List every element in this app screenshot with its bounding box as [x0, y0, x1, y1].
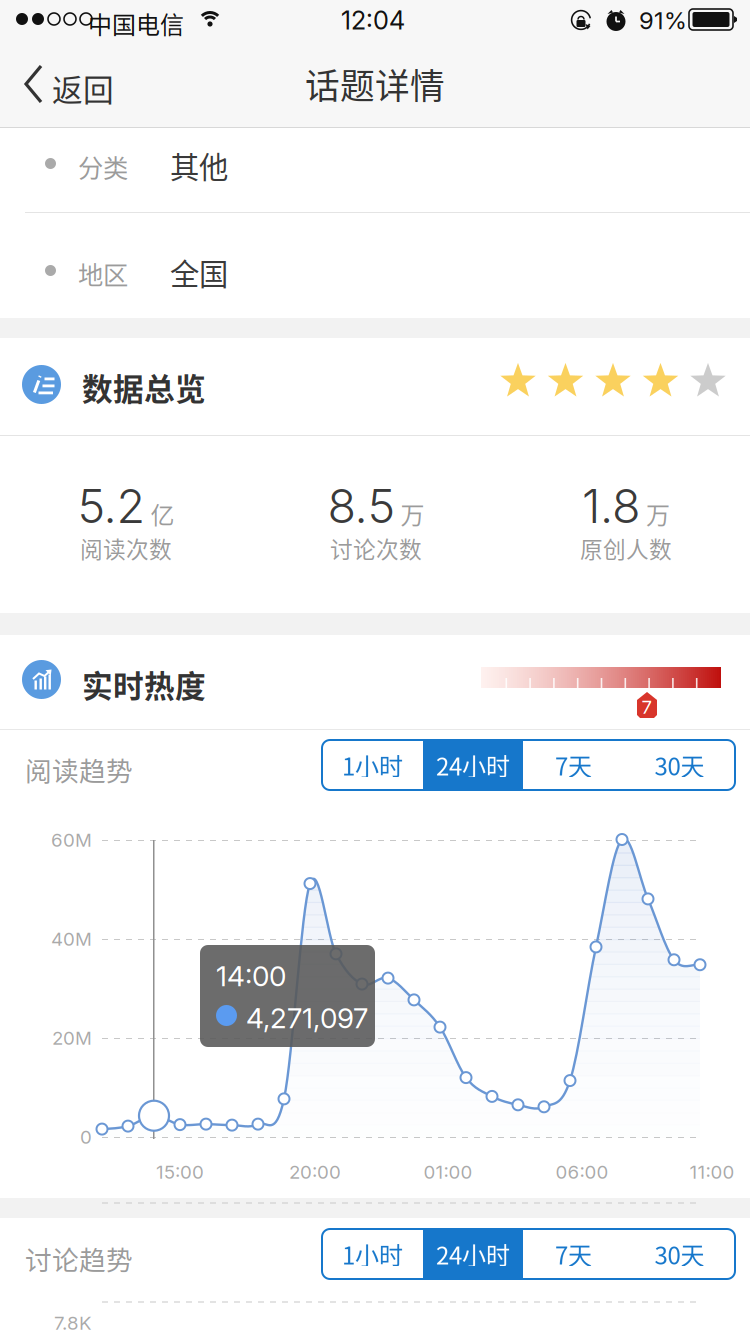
staticText: 15:00 [156, 1161, 204, 1183]
staticText: 12:04 [341, 5, 405, 36]
staticText: 7天 [555, 748, 592, 782]
button[interactable]: 1小时 [322, 1229, 423, 1279]
button[interactable]: 1小时 [322, 740, 423, 790]
staticText: 阅读次数 [80, 532, 172, 564]
staticText: 7 [641, 696, 652, 718]
staticText: 讨论趋势 [25, 1239, 133, 1278]
button[interactable]: 30天 [624, 1229, 735, 1279]
staticText: 30天 [654, 748, 704, 782]
staticText: 地区 [78, 255, 128, 292]
staticText: 全国 [170, 251, 228, 293]
staticText: 24小时 [436, 748, 510, 782]
button[interactable]: 返回 [0, 40, 140, 128]
staticText: 60M [51, 829, 92, 851]
staticText: 7.8K [54, 1312, 92, 1334]
staticText: 20:00 [289, 1161, 341, 1183]
staticText: 话题详情 [305, 59, 445, 109]
staticText: 万 [646, 496, 670, 531]
staticText: 讨论次数 [330, 532, 422, 564]
staticText: 其他 [170, 144, 228, 186]
staticText: 实时热度 [82, 662, 206, 706]
staticText: 返回 [52, 66, 114, 110]
staticText: 1小时 [342, 748, 403, 782]
button[interactable]: 24小时 [423, 740, 523, 790]
staticText: 1.8 [582, 478, 641, 534]
staticText: 20M [52, 1027, 92, 1049]
staticText: 40M [51, 928, 92, 950]
staticText: 91% [639, 6, 687, 35]
staticText: 11:00 [689, 1161, 734, 1183]
staticText: 4,271,097 [246, 1001, 368, 1035]
staticText: 5.2 [77, 478, 145, 534]
staticText: 亿 [150, 496, 174, 531]
staticText: 30天 [654, 1237, 704, 1271]
button[interactable]: 7天 [523, 740, 624, 790]
staticText: 8.5 [327, 478, 395, 534]
staticText: 7天 [555, 1237, 592, 1271]
button[interactable]: 24小时 [423, 1229, 523, 1279]
button[interactable]: 7天 [523, 1229, 624, 1279]
staticText: 阅读趋势 [25, 750, 133, 789]
staticText: 原创人数 [580, 532, 672, 564]
staticText: 万 [400, 496, 424, 531]
staticText: 14:00 [216, 959, 286, 993]
staticText: 1小时 [342, 1237, 403, 1271]
staticText: 分类 [78, 148, 128, 185]
staticText: 数据总览 [82, 365, 206, 409]
staticText: 0 [80, 1126, 92, 1148]
staticText: 06:00 [555, 1161, 608, 1183]
staticText: 01:00 [423, 1161, 472, 1183]
button[interactable]: 30天 [624, 740, 735, 790]
staticText: 24小时 [436, 1237, 510, 1271]
staticText: 中国电信 [88, 6, 184, 41]
